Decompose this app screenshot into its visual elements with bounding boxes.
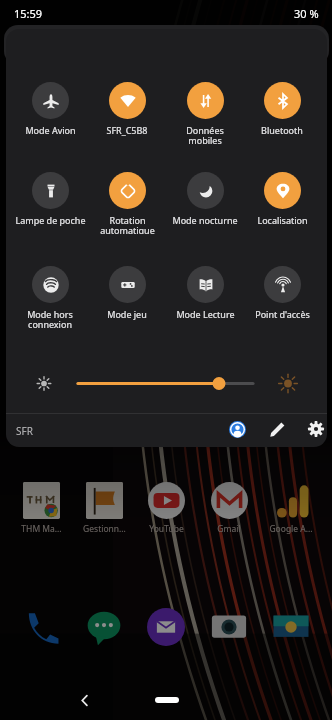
- staticText: Gmail: [217, 523, 241, 535]
- staticText: SFR_C5B8: [106, 124, 148, 136]
- staticText: Rotation automatique: [100, 214, 155, 234]
- staticText: Bluetooth: [261, 124, 303, 136]
- staticText: Google A...: [269, 523, 313, 535]
- button[interactable]: Bluetooth: [243, 82, 321, 144]
- button[interactable]: Home: [155, 697, 179, 703]
- button[interactable]: msg: [85, 608, 123, 646]
- staticText: Lampe de poche: [15, 214, 86, 226]
- staticText: SFR: [16, 424, 33, 438]
- button[interactable]: Gmail: [198, 482, 260, 535]
- staticText: Gestionn...: [83, 523, 126, 535]
- staticText: Mode hors connexion: [27, 308, 73, 328]
- button[interactable]: Lampe de poche: [11, 172, 89, 234]
- button[interactable]: photos: [272, 608, 310, 646]
- button[interactable]: YouTube: [135, 482, 197, 535]
- button[interactable]: Mode Avion: [11, 82, 89, 144]
- button[interactable]: Rotation automatique: [88, 172, 166, 234]
- button[interactable]: Settings: [302, 415, 327, 443]
- button[interactable]: Mode jeu: [88, 266, 166, 328]
- button[interactable]: cam: [210, 608, 248, 646]
- button[interactable]: Account: [223, 415, 251, 443]
- staticText: Données mobiles: [186, 124, 224, 144]
- button[interactable]: THM Ma...: [10, 482, 72, 535]
- button[interactable]: mail: [147, 608, 185, 646]
- button[interactable]: Localisation: [243, 172, 321, 234]
- staticText: Mode jeu: [107, 308, 147, 320]
- button[interactable]: Gestionn...: [73, 482, 135, 535]
- staticText: 30 %: [294, 6, 319, 21]
- button[interactable]: Google A...: [260, 482, 322, 535]
- button[interactable]: Mode Lecture: [166, 266, 244, 328]
- staticText: THM Ma...: [21, 523, 62, 535]
- button[interactable]: Edit: [263, 415, 291, 443]
- button[interactable]: phone: [22, 608, 60, 646]
- staticText: Mode nocturne: [172, 214, 238, 226]
- button[interactable]: Mode hors connexion: [11, 266, 89, 328]
- staticText: Mode Lecture: [176, 308, 235, 320]
- button[interactable]: SFR_C5B8: [88, 82, 166, 144]
- staticText: YouTube: [149, 523, 184, 535]
- button[interactable]: Back: [73, 689, 95, 711]
- staticText: Localisation: [257, 214, 308, 226]
- staticText: Mode Avion: [25, 124, 76, 136]
- staticText: 15:59: [14, 6, 43, 21]
- staticText: Point d'accès: [255, 308, 310, 320]
- button[interactable]: Données mobiles: [166, 82, 244, 144]
- button[interactable]: Mode nocturne: [166, 172, 244, 234]
- button[interactable]: Point d'accès: [243, 266, 321, 328]
